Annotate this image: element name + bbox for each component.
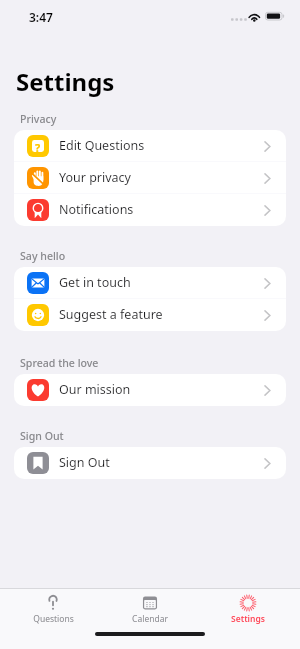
button[interactable]: Get in touch: [14, 267, 286, 299]
staticText: Notifications: [59, 201, 134, 218]
button[interactable]: Questions: [8, 589, 98, 628]
staticText: Say hello: [20, 249, 66, 263]
staticText: Sign Out: [59, 454, 110, 471]
staticText: Get in touch: [59, 274, 131, 291]
button[interactable]: Notifications: [14, 194, 286, 226]
staticText: Privacy: [20, 112, 57, 126]
staticText: 3:47: [29, 9, 53, 25]
staticText: Questions: [33, 613, 74, 625]
staticText: Settings: [231, 613, 265, 625]
staticText: Our mission: [59, 381, 131, 398]
button[interactable]: Your privacy: [14, 162, 286, 194]
button[interactable]: Calendar: [105, 589, 195, 628]
staticText: Calendar: [132, 613, 168, 625]
button[interactable]: Settings: [203, 589, 293, 628]
staticText: ?: [35, 140, 41, 152]
staticText: Your privacy: [59, 169, 131, 186]
staticText: Settings: [16, 65, 115, 98]
staticText: Suggest a feature: [59, 306, 163, 323]
staticText: Edit Questions: [59, 137, 145, 154]
button[interactable]: Suggest a feature: [14, 299, 286, 331]
button[interactable]: Sign Out: [14, 447, 286, 479]
button[interactable]: Our mission: [14, 374, 286, 406]
button[interactable]: ?: [14, 130, 286, 162]
staticText: Sign Out: [20, 429, 64, 443]
staticText: Spread the love: [20, 356, 99, 370]
